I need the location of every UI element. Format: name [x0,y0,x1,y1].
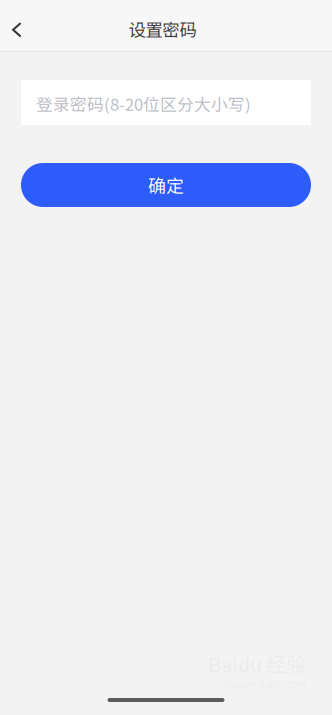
button[interactable]: 登录密码(8-20位区分大小写) [21,80,311,125]
button[interactable]: Back [0,0,34,56]
staticText: 确定 [148,172,184,198]
button[interactable]: 确定 [21,163,311,207]
staticText: 登录密码(8-20位区分大小写) [36,91,251,115]
staticText: 设置密码 [128,16,196,42]
staticText: Baidu 经验 [208,649,306,678]
